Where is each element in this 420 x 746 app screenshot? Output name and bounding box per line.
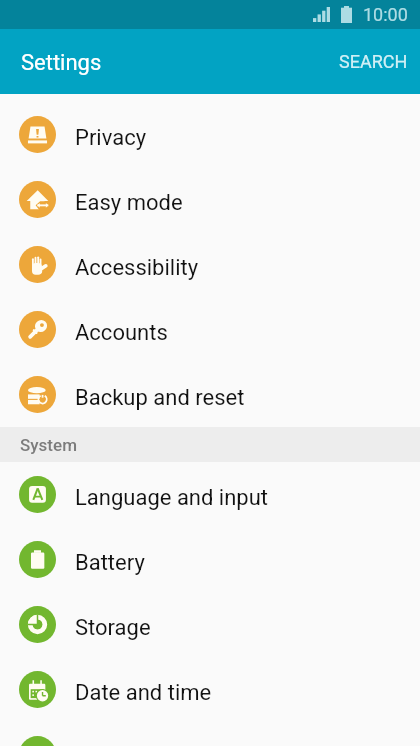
button[interactable]: Privacy <box>0 102 420 167</box>
staticText: Accessibility <box>75 255 199 281</box>
button[interactable]: Accounts <box>0 297 420 362</box>
staticText: Date and time <box>75 680 212 706</box>
staticText: Easy mode <box>75 190 183 216</box>
staticText: Settings <box>21 50 102 76</box>
staticText: Language and input <box>75 485 269 511</box>
button[interactable]: Language and input <box>0 462 420 527</box>
button[interactable]: Storage <box>0 592 420 657</box>
staticText: Privacy <box>75 125 147 151</box>
staticText: SEARCH <box>339 51 408 72</box>
button[interactable]: Accessories <box>0 722 420 746</box>
staticText: Storage <box>75 615 151 641</box>
button[interactable]: Backup and reset <box>0 362 420 427</box>
button[interactable]: Date and time <box>0 657 420 722</box>
staticText: Battery <box>75 550 145 576</box>
staticText: Accounts <box>75 320 168 346</box>
staticText: System <box>20 435 77 455</box>
staticText: 10:00 <box>363 4 408 25</box>
button[interactable]: Accessibility <box>0 232 420 297</box>
button[interactable]: Battery <box>0 527 420 592</box>
staticText: Backup and reset <box>75 385 245 411</box>
button[interactable]: SEARCH <box>302 29 420 94</box>
button[interactable]: Easy mode <box>0 167 420 232</box>
